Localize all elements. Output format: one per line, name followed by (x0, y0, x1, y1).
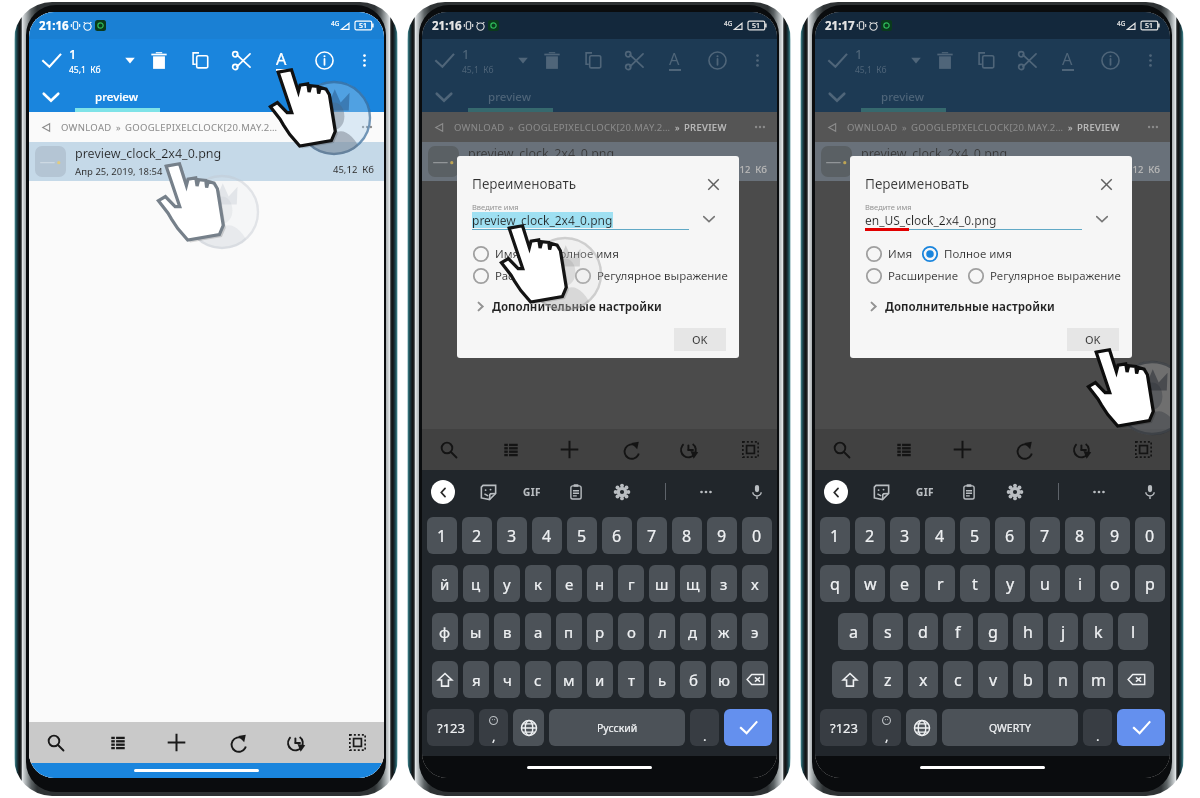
button[interactable]: Stickers (870, 481, 892, 503)
button[interactable]: e (890, 565, 920, 602)
button[interactable]: Search (821, 429, 861, 470)
button[interactable]: j (1048, 613, 1078, 650)
button[interactable]: View mode (98, 722, 138, 763)
button[interactable]: Path options (751, 118, 769, 136)
button[interactable]: View mode (884, 429, 924, 470)
button[interactable]: History (1063, 429, 1103, 470)
button[interactable]: и (587, 661, 613, 698)
button[interactable]: ?123 (820, 709, 867, 746)
button[interactable]: 1 (462, 39, 494, 81)
button[interactable]: Backspace (742, 661, 768, 698)
button[interactable]: g (978, 613, 1008, 650)
button[interactable]: preview_clock_2x4_0.png (422, 142, 777, 181)
button[interactable]: r (925, 565, 955, 602)
button[interactable]: Done (1117, 709, 1165, 746)
button[interactable]: v (978, 661, 1008, 698)
button[interactable]: 0 (742, 517, 772, 554)
button[interactable]: Voice input (746, 481, 768, 503)
button[interactable]: z (873, 661, 903, 698)
button[interactable]: preview (859, 81, 946, 112)
button[interactable]: а (525, 613, 551, 650)
button[interactable]: . (690, 709, 719, 746)
button[interactable]: я (463, 661, 489, 698)
button[interactable]: 8 (1065, 517, 1095, 554)
button[interactable]: Expand selection (511, 39, 535, 81)
button[interactable]: View mode (491, 429, 531, 470)
button[interactable]: у (494, 565, 520, 602)
button[interactable]: э (742, 613, 768, 650)
button[interactable]: n (1048, 661, 1078, 698)
button[interactable]: к (525, 565, 551, 602)
button[interactable]: 7 (637, 517, 667, 554)
button[interactable]: 1 (855, 39, 887, 81)
button[interactable]: x (908, 661, 938, 698)
button[interactable]: preview_clock_2x4_0.png (29, 142, 384, 181)
button[interactable]: Имя (472, 245, 520, 263)
button[interactable]: 2 (855, 517, 885, 554)
button[interactable]: preview (466, 81, 553, 112)
button[interactable]: Properties (702, 39, 732, 81)
button[interactable]: Path options (358, 118, 376, 136)
button[interactable]: Refresh (1006, 429, 1046, 470)
button[interactable]: GIF (916, 485, 934, 499)
button[interactable]: Cut (619, 39, 649, 81)
button[interactable]: о (618, 613, 644, 650)
button[interactable]: 2 (462, 517, 492, 554)
button[interactable]: Расширение (865, 267, 959, 285)
button[interactable]: Back (824, 480, 848, 504)
button[interactable]: Дополнительные настройки (867, 296, 1055, 317)
button[interactable]: a (838, 613, 868, 650)
button[interactable]: Refresh (613, 429, 653, 470)
button[interactable]: 5 (567, 517, 597, 554)
button[interactable]: Add (549, 429, 589, 470)
button[interactable]: ж (711, 613, 737, 650)
button[interactable]: u (1030, 565, 1060, 602)
button[interactable]: Shift (432, 661, 458, 698)
button[interactable]: y (995, 565, 1025, 602)
button[interactable]: w (855, 565, 885, 602)
button[interactable]: Delete (930, 39, 960, 81)
button[interactable]: Delete (144, 39, 174, 81)
button[interactable]: t (960, 565, 990, 602)
button[interactable]: щ (680, 565, 706, 602)
button[interactable]: ь (649, 661, 675, 698)
button[interactable]: More options (1135, 39, 1165, 81)
button[interactable]: Close (701, 172, 725, 196)
button[interactable]: More (1088, 481, 1110, 503)
button[interactable]: Регулярное выражение (574, 267, 728, 285)
button[interactable]: Дополнительные настройки (474, 296, 662, 317)
button[interactable]: л (649, 613, 675, 650)
button[interactable]: Rename (266, 39, 296, 81)
button[interactable]: ы (463, 613, 489, 650)
button[interactable]: р (587, 613, 613, 650)
button[interactable]: 3 (497, 517, 527, 554)
button[interactable]: Switch language (906, 709, 937, 746)
button[interactable]: 4 (532, 517, 562, 554)
button[interactable]: s (873, 613, 903, 650)
button[interactable]: m (1083, 661, 1113, 698)
button[interactable]: Select all (1123, 429, 1163, 470)
button[interactable]: Cut (1012, 39, 1042, 81)
button[interactable]: ч (494, 661, 520, 698)
button[interactable]: Cut (226, 39, 256, 81)
button[interactable]: Select all (730, 429, 770, 470)
button[interactable]: l (1118, 613, 1148, 650)
button[interactable]: Switch language (513, 709, 544, 746)
button[interactable]: Show tabs (29, 81, 73, 112)
button[interactable]: Delete (537, 39, 567, 81)
button[interactable]: f (943, 613, 973, 650)
button[interactable]: Selection (822, 39, 852, 81)
button[interactable]: GIF (523, 485, 541, 499)
button[interactable]: Copy (578, 39, 608, 81)
button[interactable]: 9 (1100, 517, 1130, 554)
button[interactable]: ?123 (427, 709, 474, 746)
button[interactable]: q (820, 565, 850, 602)
button[interactable]: 8 (672, 517, 702, 554)
button[interactable]: Show tabs (422, 81, 466, 112)
button[interactable]: 0 (1135, 517, 1165, 554)
button[interactable]: 1 (820, 517, 850, 554)
button[interactable]: б (680, 661, 706, 698)
button[interactable]: Up (823, 118, 841, 136)
button[interactable]: Backspace (1118, 661, 1154, 698)
button[interactable]: QWERTY (942, 709, 1078, 746)
